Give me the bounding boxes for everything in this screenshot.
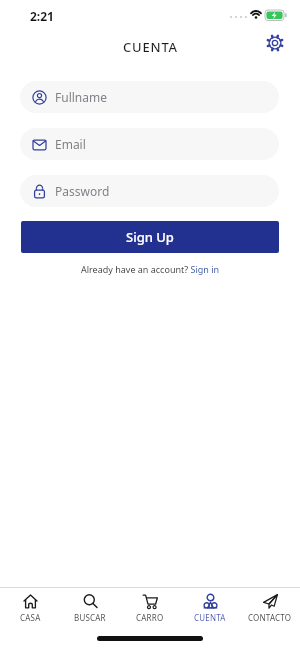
button[interactable]: BUSCAR: [60, 590, 120, 630]
button[interactable]: CASA: [0, 590, 60, 630]
button[interactable]: Fullname: [20, 81, 279, 113]
staticText: CUENTA: [123, 38, 178, 56]
staticText: Email: [55, 136, 86, 152]
button[interactable]: CARRO: [120, 590, 180, 630]
button[interactable]: Password: [20, 175, 279, 207]
staticText: CASA: [20, 612, 41, 623]
button[interactable]: Already have an account? Sign in: [0, 263, 300, 275]
staticText: CONTACTO: [248, 612, 292, 623]
staticText: CUENTA: [194, 612, 226, 623]
button[interactable]: Sign Up: [21, 221, 279, 253]
staticText: Sign Up: [126, 228, 174, 246]
button[interactable]: Email: [20, 128, 279, 160]
button[interactable]: [262, 30, 288, 56]
staticText: Already have an account? Sign in: [81, 263, 220, 275]
staticText: BUSCAR: [74, 612, 106, 623]
staticText: 2:21: [30, 8, 54, 24]
button[interactable]: CONTACTO: [240, 590, 300, 630]
staticText: Fullname: [55, 89, 107, 105]
button[interactable]: CUENTA: [180, 590, 240, 630]
staticText: CARRO: [136, 612, 164, 623]
staticText: Password: [55, 183, 110, 199]
